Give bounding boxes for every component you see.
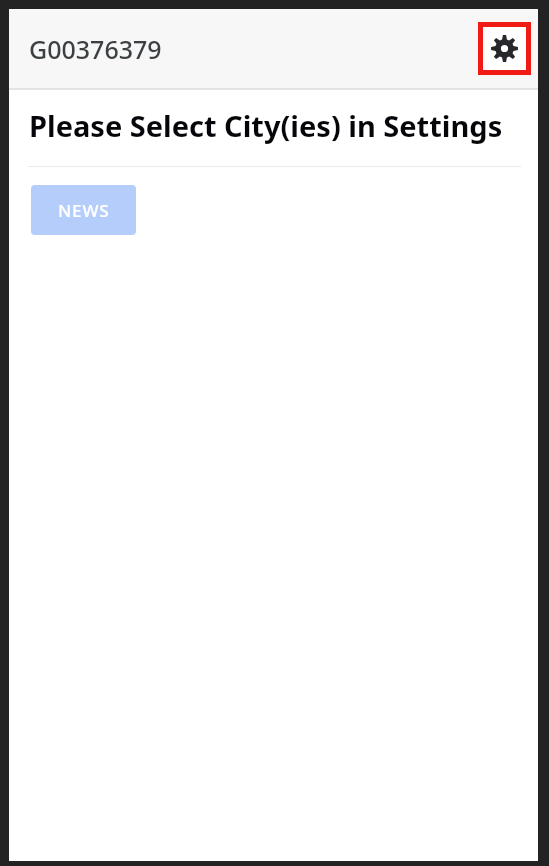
staticText: Please Select City(ies) in Settings [29, 106, 516, 145]
staticText: NEWS [58, 199, 110, 222]
button[interactable]: NEWS [31, 185, 136, 235]
button[interactable]: Settings [478, 22, 531, 75]
staticText: G00376379 [29, 32, 162, 66]
